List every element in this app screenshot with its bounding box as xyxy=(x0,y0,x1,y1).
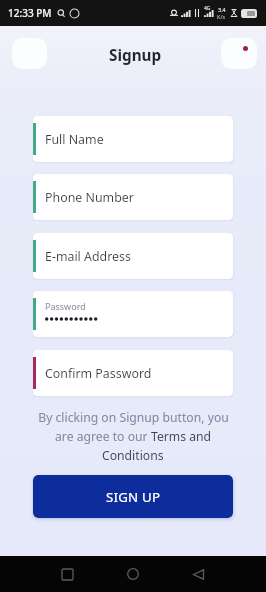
button[interactable]: Password xyxy=(33,291,233,337)
staticText: 3.4 xyxy=(218,6,226,13)
staticText: K/s xyxy=(217,13,226,20)
staticText: By clicking on Signup button, you xyxy=(38,409,229,426)
button[interactable]: E-mail Address xyxy=(33,233,233,279)
staticText: Password xyxy=(45,300,86,312)
button[interactable]: Notifications xyxy=(221,38,257,69)
button[interactable]: Menu xyxy=(12,38,47,69)
staticText: E-mail Address xyxy=(45,248,131,265)
button[interactable]: Home xyxy=(120,556,146,592)
staticText: are agree to our xyxy=(55,428,151,445)
button[interactable]: Full Name xyxy=(33,116,233,162)
staticText: SIGN UP xyxy=(106,488,161,506)
staticText: Full Name xyxy=(45,131,104,148)
button[interactable]: Back xyxy=(185,556,211,592)
staticText: Confirm Password xyxy=(45,365,152,382)
button[interactable]: Recents xyxy=(54,556,80,592)
button[interactable]: Phone Number xyxy=(33,174,233,220)
staticText: Signup xyxy=(109,45,162,66)
button[interactable]: Conditions xyxy=(102,447,164,464)
staticText: 12:33 PM xyxy=(8,6,52,20)
button[interactable]: are agree to our xyxy=(55,428,212,445)
staticText: Phone Number xyxy=(45,189,134,206)
staticText: Terms and xyxy=(151,428,212,445)
button[interactable]: Confirm Password xyxy=(33,350,233,396)
staticText: 4G xyxy=(204,5,211,12)
button[interactable]: SIGN UP xyxy=(33,475,233,518)
